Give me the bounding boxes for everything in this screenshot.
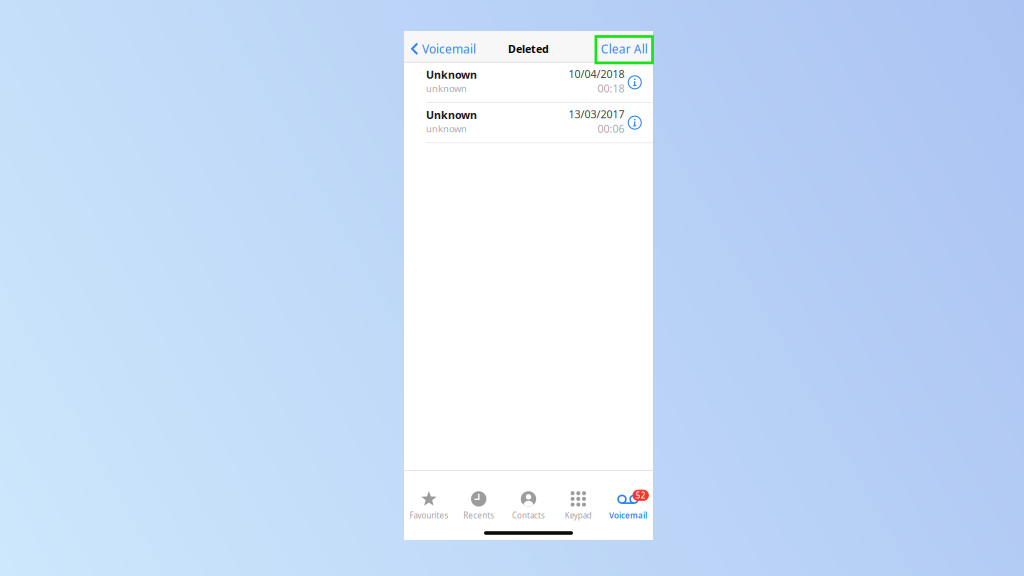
staticText: unknown (426, 122, 467, 135)
staticText: 13/03/2017 (568, 107, 624, 121)
button[interactable]: More info (624, 103, 645, 142)
staticText: Unknown (426, 108, 477, 122)
button[interactable]: Voicemail (404, 31, 482, 63)
staticText: Keypad (565, 510, 592, 521)
staticText: Voicemail (609, 510, 647, 521)
button[interactable]: Clear All (596, 34, 653, 60)
staticText: Recents (463, 510, 494, 521)
staticText: Favourites (409, 510, 448, 521)
staticText: 00:18 (597, 81, 624, 95)
button[interactable]: Contacts (504, 471, 553, 523)
button[interactable]: More info (624, 63, 645, 102)
staticText: unknown (426, 82, 467, 94)
staticText: Contacts (512, 510, 545, 521)
staticText: Voicemail (422, 41, 476, 57)
button[interactable]: Unknown (404, 63, 624, 102)
staticText: 10/04/2018 (568, 67, 624, 81)
button[interactable]: 52 (603, 471, 653, 523)
button[interactable]: Favourites (404, 471, 454, 523)
staticText: 00:06 (597, 122, 624, 136)
staticText: Deleted (508, 42, 549, 56)
staticText: 52 (636, 490, 646, 501)
staticText: Clear All (601, 41, 648, 57)
button[interactable]: Recents (454, 471, 504, 523)
button[interactable]: Keypad (553, 471, 603, 523)
button[interactable]: Unknown (404, 103, 624, 142)
staticText: Unknown (426, 68, 477, 82)
